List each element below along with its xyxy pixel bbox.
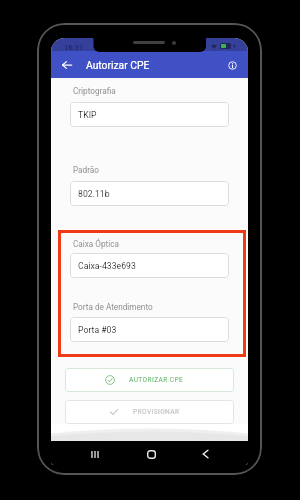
button[interactable]: Back bbox=[57, 55, 77, 75]
button[interactable]: 802.11b bbox=[70, 181, 229, 206]
staticText: Porta #03 bbox=[78, 325, 117, 335]
button[interactable]: Porta #03 bbox=[70, 317, 229, 342]
button[interactable]: Information bbox=[222, 55, 242, 75]
staticText: Autorizar CPE bbox=[86, 59, 150, 71]
staticText: 16:31 bbox=[64, 43, 84, 52]
staticText: AUTORIZAR CPE bbox=[129, 376, 184, 384]
staticText: 802.11b bbox=[78, 189, 110, 199]
staticText: Caixa Óptica bbox=[73, 239, 119, 249]
staticText: Criptografia bbox=[73, 86, 116, 96]
staticText: TKIP bbox=[78, 110, 97, 120]
button[interactable]: AUTORIZAR CPE bbox=[65, 368, 234, 392]
button[interactable]: Home bbox=[142, 445, 160, 463]
staticText: Padrão bbox=[73, 165, 99, 175]
button[interactable]: Back bbox=[196, 445, 214, 463]
staticText: Porta de Atendimento bbox=[73, 302, 153, 312]
staticText: PROVISIONAR bbox=[133, 408, 180, 416]
button[interactable]: Caixa-433e693 bbox=[70, 253, 229, 278]
button[interactable]: TKIP bbox=[70, 102, 229, 127]
button[interactable]: Recent apps bbox=[86, 445, 104, 463]
button[interactable]: PROVISIONAR bbox=[65, 400, 234, 424]
staticText: Caixa-433e693 bbox=[78, 261, 136, 271]
